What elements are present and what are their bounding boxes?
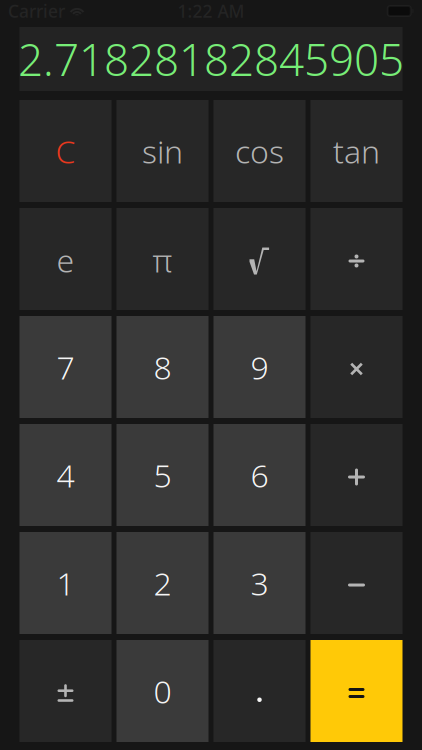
staticText: 1:22 AM <box>177 0 244 22</box>
staticText: e <box>56 239 74 281</box>
staticText: Carrier <box>8 0 65 22</box>
button[interactable]: 4 <box>19 424 111 526</box>
button[interactable]: tan <box>310 100 402 202</box>
button[interactable]: 7 <box>19 316 111 418</box>
button[interactable]: 3 <box>213 532 305 634</box>
staticText: 5 <box>153 454 171 496</box>
button[interactable]: 8 <box>116 316 208 418</box>
button[interactable]: Equals <box>310 640 402 742</box>
staticText: 3 <box>250 562 268 604</box>
button[interactable]: Multiply <box>310 316 402 418</box>
button[interactable]: 5 <box>116 424 208 526</box>
button[interactable]: 9 <box>213 316 305 418</box>
button[interactable]: Subtract <box>310 532 402 634</box>
staticText: 4 <box>56 454 74 496</box>
button[interactable]: cos <box>213 100 305 202</box>
button[interactable]: Square root <box>213 208 305 310</box>
button[interactable]: Decimal point <box>213 640 305 742</box>
staticText: 9 <box>250 346 268 388</box>
staticText: 1 <box>56 562 74 604</box>
staticText: 6 <box>250 454 268 496</box>
button[interactable]: π <box>116 208 208 310</box>
button[interactable]: 2 <box>116 532 208 634</box>
staticText: 2 <box>153 562 171 604</box>
staticText: cos <box>235 130 284 172</box>
button[interactable]: 1 <box>19 532 111 634</box>
staticText: 8 <box>153 346 171 388</box>
staticText: 2.71828182845905 <box>18 30 404 88</box>
staticText: π <box>152 239 172 281</box>
staticText: tan <box>333 130 380 172</box>
staticText: C <box>55 130 75 172</box>
button[interactable]: 6 <box>213 424 305 526</box>
button[interactable]: 0 <box>116 640 208 742</box>
button[interactable]: C <box>19 100 111 202</box>
staticText: 0 <box>153 670 171 712</box>
button[interactable]: sin <box>116 100 208 202</box>
staticText: sin <box>142 130 183 172</box>
button[interactable]: Divide <box>310 208 402 310</box>
staticText: 7 <box>56 346 74 388</box>
button[interactable]: e <box>19 208 111 310</box>
button[interactable]: Add <box>310 424 402 526</box>
button[interactable]: Plus or minus <box>19 640 111 742</box>
